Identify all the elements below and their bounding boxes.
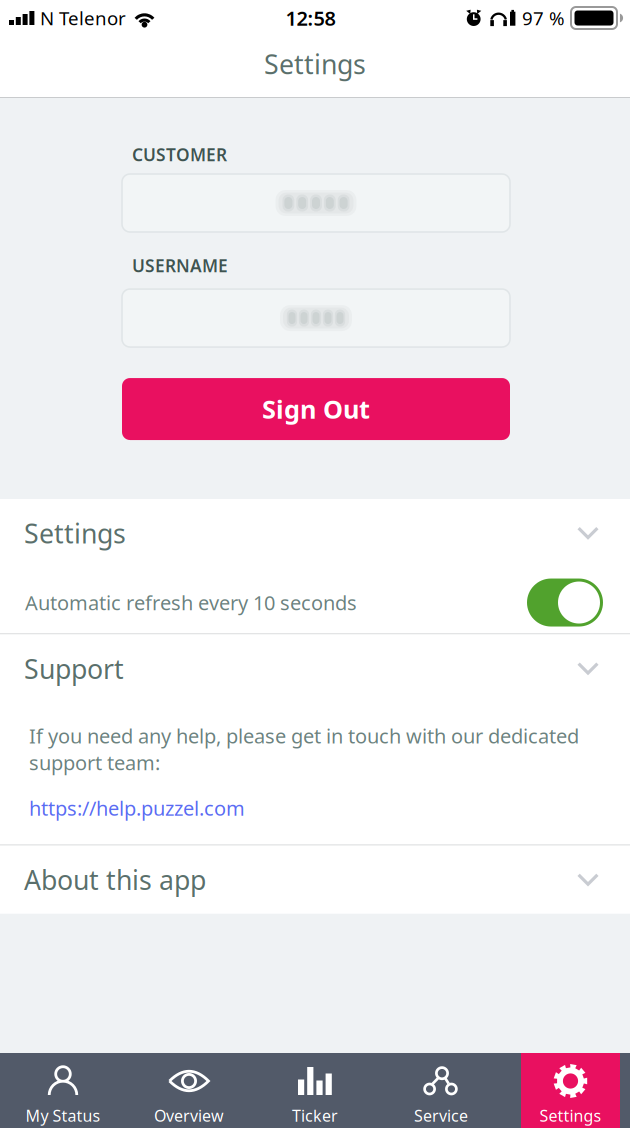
staticText: https://help.puzzel.com: [29, 795, 245, 821]
button[interactable]: Support: [0, 634, 630, 702]
button[interactable]: Settings: [0, 499, 630, 567]
staticText: Service: [414, 1105, 468, 1126]
staticText: Sign Out: [262, 392, 370, 426]
staticText: N Telenor: [40, 6, 126, 30]
staticText: Automatic refresh every 10 seconds: [25, 589, 357, 616]
button[interactable]: Automatic refresh every 10 seconds: [527, 578, 603, 626]
button[interactable]: Overview: [126, 1053, 252, 1128]
staticText: About this app: [24, 862, 206, 897]
staticText: 12:58: [285, 5, 335, 31]
button[interactable]: Service: [378, 1053, 504, 1128]
button[interactable]: Ticker: [252, 1053, 378, 1128]
button[interactable]: About this app: [0, 846, 630, 914]
staticText: Support: [24, 651, 124, 686]
staticText: If you need any help, please get in touc…: [29, 722, 579, 776]
staticText: Settings: [539, 1105, 601, 1126]
staticText: CUSTOMER: [132, 143, 227, 166]
staticText: Settings: [24, 515, 126, 551]
button[interactable]: https://help.puzzel.com: [29, 776, 245, 821]
staticText: Ticker: [292, 1105, 338, 1126]
staticText: Overview: [154, 1105, 224, 1126]
staticText: 97 %: [522, 6, 565, 30]
staticText: Settings: [264, 46, 366, 82]
button[interactable]: Sign Out: [122, 378, 510, 440]
staticText: My Status: [25, 1105, 100, 1126]
staticText: USERNAME: [132, 254, 228, 277]
button[interactable]: My Status: [0, 1053, 126, 1128]
button[interactable]: Settings: [521, 1053, 620, 1128]
